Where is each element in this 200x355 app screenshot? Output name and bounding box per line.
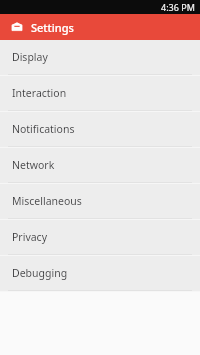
button[interactable]: Interaction (0, 76, 200, 110)
staticText: Interaction (12, 86, 67, 100)
staticText: Privacy (12, 230, 48, 244)
staticText: Network (12, 158, 55, 172)
button[interactable]: Network (0, 148, 200, 182)
button[interactable]: Privacy (0, 220, 200, 254)
staticText: 4:36 PM (161, 1, 195, 13)
button[interactable]: Notifications (0, 112, 200, 146)
staticText: Display (12, 50, 48, 64)
button[interactable]: Debugging (0, 256, 200, 290)
staticText: Debugging (12, 266, 68, 280)
staticText: Notifications (12, 122, 75, 136)
staticText: Settings (31, 20, 74, 35)
button[interactable]: App icon (10, 20, 24, 34)
staticText: Miscellaneous (12, 194, 82, 208)
button[interactable]: Miscellaneous (0, 184, 200, 218)
button[interactable]: Display (0, 40, 200, 74)
